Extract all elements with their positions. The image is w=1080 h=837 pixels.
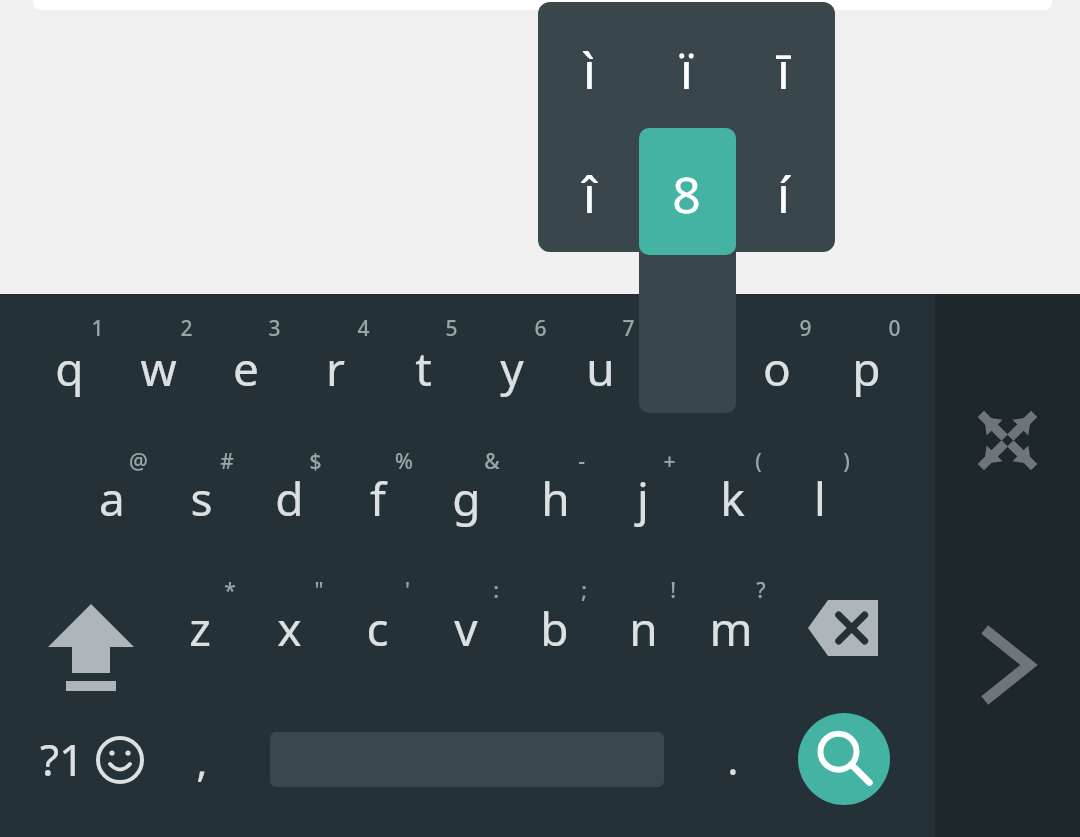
staticText: ī [777,36,790,104]
staticText: o [763,337,791,400]
staticText: z [189,597,211,660]
button[interactable]: Next [975,625,1045,705]
button[interactable] [33,0,1052,10]
staticText: # [220,447,234,476]
button[interactable]: , [162,724,242,796]
staticText: " [314,576,324,605]
staticText: y [500,337,524,400]
staticText: 4 [357,314,370,343]
staticText: 1 [91,314,104,343]
button[interactable]: ī [735,24,831,116]
staticText: d [275,467,304,530]
staticText: & [484,447,500,476]
button[interactable]: e [206,332,286,404]
staticText: g [452,467,481,530]
staticText: ? [756,576,766,605]
button[interactable]: r [295,332,375,404]
button[interactable]: n [603,592,683,664]
staticText: ï [680,36,693,104]
button[interactable]: l [780,462,860,534]
staticText: e [233,337,259,400]
staticText: : [493,576,499,605]
button[interactable] [639,128,736,255]
button[interactable]: t [383,332,463,404]
staticText: v [454,597,478,660]
staticText: l [814,467,826,530]
button[interactable]: ï [638,24,734,116]
button[interactable]: s [161,462,241,534]
staticText: * [224,576,236,605]
staticText: j [637,467,649,530]
staticText: - [578,447,585,476]
staticText: c [366,597,389,660]
staticText: î [583,160,596,228]
staticText: 3 [268,314,281,343]
staticText: ?1 [40,729,85,789]
staticText: n [629,597,658,660]
button[interactable]: Backspace [808,598,886,658]
button[interactable]: Search [798,713,890,805]
button[interactable]: Resize keyboard [979,412,1036,469]
button[interactable]: a [72,462,152,534]
staticText: 0 [888,314,901,343]
button[interactable]: h [515,462,595,534]
staticText: ; [581,576,587,605]
button[interactable]: d [249,462,329,534]
staticText: , [196,732,208,789]
staticText: 6 [534,314,547,343]
staticText: í [777,160,790,228]
staticText: f [370,467,386,530]
button[interactable]: z [160,592,240,664]
button[interactable]: y [472,332,552,404]
button[interactable]: b [514,592,594,664]
staticText: k [720,467,745,530]
button[interactable]: x [249,592,329,664]
staticText: 2 [180,314,193,343]
staticText: $ [309,447,322,476]
button[interactable]: q [29,332,109,404]
button[interactable]: v [426,592,506,664]
staticText: 9 [799,314,812,343]
button[interactable]: m [691,592,771,664]
button[interactable]: c [337,592,417,664]
button[interactable]: 8 [638,148,734,240]
button[interactable]: f [338,462,418,534]
button[interactable]: . [693,722,773,794]
staticText: s [190,467,213,530]
staticText: 8 [672,160,701,228]
staticText: 7 [622,314,635,343]
staticText: b [540,597,569,660]
button[interactable]: Shift [45,585,137,680]
button[interactable]: ì [541,24,637,116]
staticText: w [140,337,177,400]
staticText: ì [583,36,596,104]
button[interactable]: î [541,148,637,240]
staticText: m [709,597,753,660]
staticText: 5 [445,314,458,343]
staticText: ) [843,447,850,476]
staticText: ( [755,447,762,476]
staticText: a [99,467,125,530]
button[interactable]: j [603,462,683,534]
staticText: . [727,730,739,787]
staticText: q [55,337,84,400]
staticText: x [277,597,302,660]
staticText: r [326,337,345,400]
staticText: h [541,467,570,530]
staticText: t [415,337,432,400]
button[interactable]: u [560,332,640,404]
button[interactable]: w [118,332,198,404]
staticText: ' [405,576,410,605]
button[interactable]: í [735,148,831,240]
button[interactable]: k [692,462,772,534]
button[interactable]: o [737,332,817,404]
button[interactable]: ?1 [40,722,150,796]
button[interactable]: p [826,332,906,404]
button[interactable]: g [426,462,506,534]
staticText: @ [129,447,148,476]
staticText: p [852,337,881,400]
staticText: u [586,337,615,400]
staticText: + [663,447,676,476]
